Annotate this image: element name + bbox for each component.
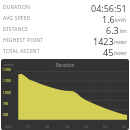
staticText: TOTAL ASCENT	[3, 48, 40, 55]
staticText: 4.0	[84, 125, 89, 129]
staticText: meter	[114, 39, 127, 45]
staticText: 04:56:51	[91, 2, 127, 13]
button[interactable]: HIGHEST POINT	[0, 35, 130, 46]
staticText: DISTANCE	[3, 26, 29, 33]
staticText: 3.0	[65, 125, 70, 129]
staticText: 2.0	[45, 125, 50, 129]
staticText: 0 km	[5, 125, 12, 129]
staticText: 1423	[93, 35, 114, 46]
staticText: 6.0	[122, 125, 127, 129]
staticText: 500	[3, 113, 9, 117]
staticText: Elevation	[1, 62, 129, 68]
button[interactable]: DURATION	[0, 2, 130, 13]
staticText: 1.0	[26, 125, 31, 129]
button[interactable]: Elevation profile chart	[1, 59, 129, 130]
staticText: km	[119, 28, 127, 34]
staticText: 6.3	[106, 24, 119, 35]
button[interactable]: DISTANCE	[0, 24, 130, 35]
button[interactable]: AVG SPEED	[0, 13, 130, 24]
staticText: AVG SPEED	[3, 15, 31, 22]
staticText: 5.0	[103, 125, 108, 129]
staticText: DURATION	[3, 4, 31, 11]
staticText: meter	[4, 62, 14, 67]
staticText: 1 000	[3, 91, 11, 95]
staticText: meter	[114, 50, 127, 56]
staticText: 45	[103, 46, 114, 57]
staticText: 750	[3, 102, 9, 106]
staticText: 1 250	[3, 79, 11, 83]
staticText: 1.6	[102, 13, 115, 24]
staticText: km/h	[115, 17, 127, 23]
staticText: 1 500	[3, 68, 11, 72]
staticText: HIGHEST POINT	[3, 37, 44, 44]
button[interactable]: TOTAL ASCENT	[0, 46, 130, 57]
